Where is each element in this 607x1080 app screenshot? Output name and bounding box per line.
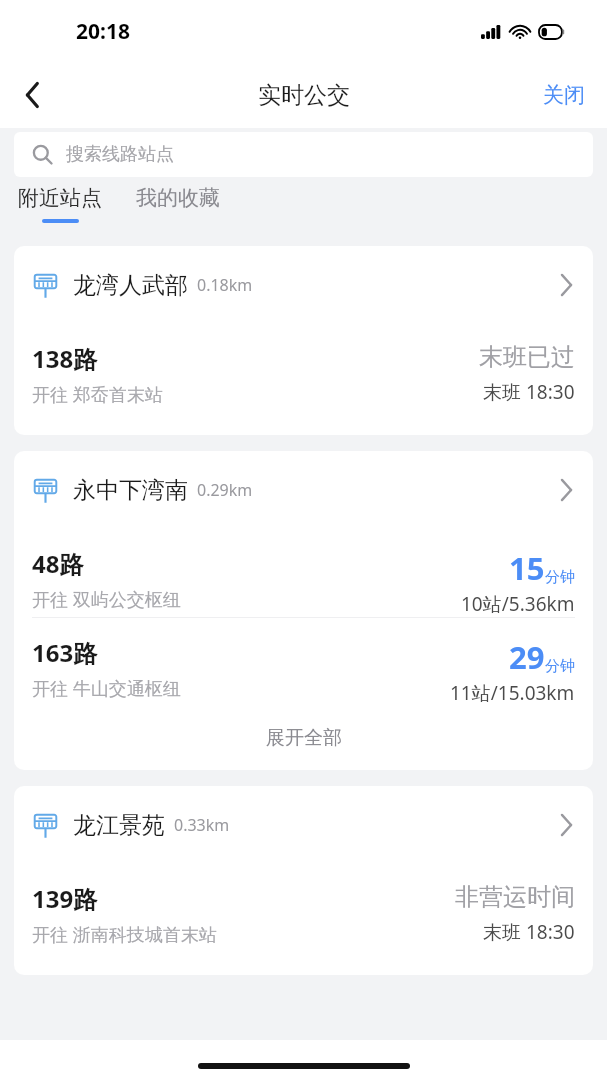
staticText: 附近站点 (18, 185, 102, 211)
staticText: 163路 (32, 636, 98, 669)
staticText: 20:18 (76, 17, 130, 46)
staticText: 末班已过 (479, 342, 575, 372)
button[interactable]: 龙湾人武部 (14, 246, 593, 435)
staticText: 15 (509, 547, 545, 589)
staticText: 11站/15.03km (450, 680, 575, 706)
staticText: 开往 双屿公交枢纽 (32, 587, 181, 612)
staticText: 开往 浙南科技城首末站 (32, 922, 217, 947)
button[interactable]: 展开全部 (14, 706, 593, 770)
staticText: 实时公交 (258, 81, 350, 110)
staticText: 0.33km (174, 814, 230, 836)
staticText: 末班 18:30 (483, 919, 575, 945)
staticText: 关闭 (543, 82, 585, 108)
button[interactable]: 搜索线路站点 (14, 132, 593, 177)
staticText: 139路 (32, 882, 98, 915)
button[interactable]: 附近站点 (16, 185, 104, 223)
staticText: 29 (509, 636, 545, 678)
staticText: 永中下湾南 (73, 476, 188, 505)
staticText: 分钟 (545, 568, 575, 587)
button[interactable]: 我的收藏 (134, 185, 222, 211)
staticText: 搜索线路站点 (66, 143, 174, 166)
button[interactable]: 龙江景苑 (14, 786, 593, 975)
staticText: 48路 (32, 547, 84, 580)
staticText: 0.18km (197, 274, 253, 296)
button[interactable]: 返回 (0, 62, 64, 128)
staticText: 0.29km (197, 479, 253, 501)
button[interactable]: 永中下湾南 (14, 451, 593, 770)
staticText: 开往 郑岙首末站 (32, 382, 163, 407)
staticText: 10站/5.36km (461, 591, 575, 617)
staticText: 分钟 (545, 657, 575, 676)
staticText: 138路 (32, 342, 98, 375)
button[interactable]: 关闭 (521, 62, 607, 128)
staticText: 非营运时间 (455, 882, 575, 912)
staticText: 龙江景苑 (73, 811, 165, 840)
staticText: 开往 牛山交通枢纽 (32, 676, 181, 701)
staticText: 我的收藏 (136, 185, 220, 211)
staticText: 末班 18:30 (483, 379, 575, 405)
staticText: 展开全部 (266, 726, 342, 750)
staticText: 龙湾人武部 (73, 271, 188, 300)
